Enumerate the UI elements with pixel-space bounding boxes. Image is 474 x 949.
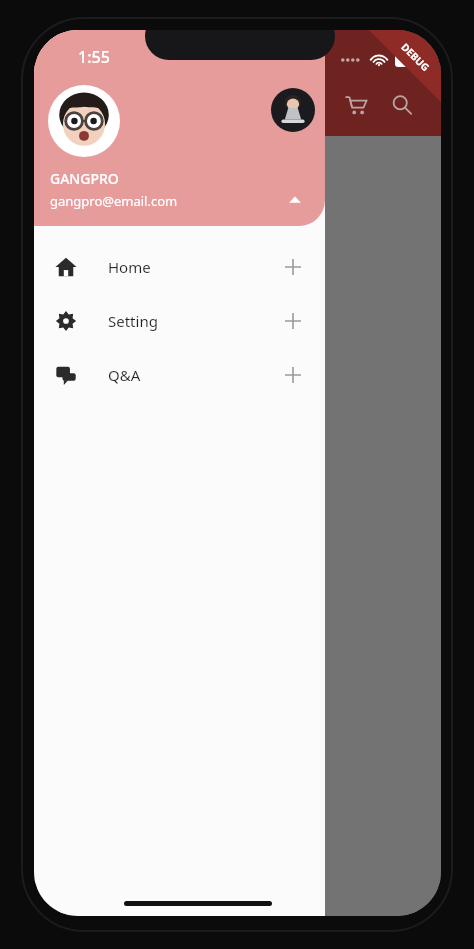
- button[interactable]: Expand Q&A: [279, 361, 307, 389]
- staticText: gangpro@email.com: [50, 192, 178, 210]
- staticText: Q&A: [108, 365, 141, 385]
- staticText: Setting: [108, 311, 158, 331]
- button[interactable]: Profile picture: [48, 85, 120, 157]
- button[interactable]: 1:55: [34, 30, 325, 226]
- staticText: 1:55: [78, 46, 110, 68]
- button[interactable]: Expand Home: [279, 253, 307, 281]
- button[interactable]: Secondary account: [271, 88, 315, 132]
- staticText: Home: [108, 257, 151, 277]
- staticText: DEBUG: [398, 40, 433, 74]
- button[interactable]: Home: [34, 240, 325, 294]
- staticText: GANGPRO: [50, 169, 119, 188]
- button[interactable]: Cart: [333, 82, 379, 128]
- button[interactable]: Expand Setting: [279, 307, 307, 335]
- button[interactable]: Q&A: [34, 348, 325, 402]
- button[interactable]: Collapse account list: [283, 188, 307, 212]
- button[interactable]: Search: [379, 82, 425, 128]
- button[interactable]: Setting: [34, 294, 325, 348]
